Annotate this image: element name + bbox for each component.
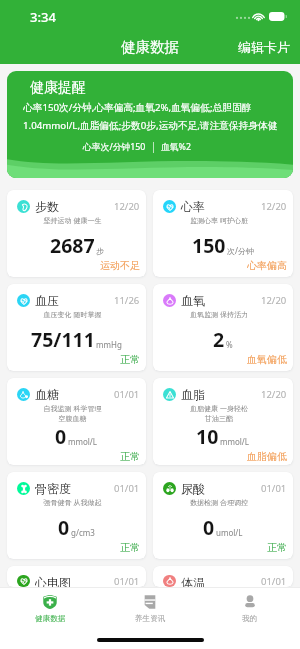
staticText: 150 xyxy=(192,232,226,259)
button[interactable]: 血氧 xyxy=(153,284,293,371)
staticText: 血糖 xyxy=(35,387,59,402)
staticText: 监测心率 呵护心脏 xyxy=(173,216,265,226)
staticText: 12/20 xyxy=(261,388,287,401)
staticText: 血压变化 随时掌握 xyxy=(27,310,118,320)
staticText: 01/01 xyxy=(261,575,287,587)
staticText: 次/分钟 xyxy=(227,245,254,256)
staticText: mmol/L xyxy=(220,436,250,447)
staticText: 12/20 xyxy=(261,294,287,307)
button[interactable]: 编辑卡片 xyxy=(230,38,300,59)
staticText: 01/01 xyxy=(261,482,287,495)
staticText: 2687 xyxy=(50,232,95,259)
staticText: 01/01 xyxy=(114,575,140,587)
staticText: 空腹血糖 xyxy=(27,414,118,423)
staticText: 血氧监测 保持活力 xyxy=(173,310,265,320)
button[interactable]: 血压 xyxy=(7,284,146,371)
button[interactable]: 我的 xyxy=(200,588,300,631)
staticText: 0 xyxy=(58,514,70,541)
staticText: 0 xyxy=(55,423,67,450)
staticText: 12/20 xyxy=(114,200,140,213)
staticText: 01/01 xyxy=(114,388,140,401)
staticText: 01/01 xyxy=(114,482,140,495)
button[interactable]: 体温 xyxy=(153,566,293,587)
staticText: 0 xyxy=(203,514,215,541)
staticText: g/cm3 xyxy=(71,527,95,538)
staticText: 体温 xyxy=(181,575,205,587)
staticText: 血压 xyxy=(35,293,59,308)
staticText: 11/26 xyxy=(114,294,140,307)
staticText: mmol/L xyxy=(68,436,98,447)
staticText: 健康提醒 xyxy=(30,79,86,97)
staticText: 正常 xyxy=(267,541,287,554)
button[interactable]: 健康数据 xyxy=(0,588,100,631)
staticText: 心率150次/分钟,心率偏高;血氧2%,血氧偏低;总胆固醇1.04mmol/L,… xyxy=(23,101,278,132)
staticText: 我的 xyxy=(242,614,258,624)
staticText: mmHg xyxy=(96,339,122,350)
staticText: 运动不足 xyxy=(100,259,140,272)
staticText: 养生资讯 xyxy=(135,614,166,624)
staticText: 尿酸 xyxy=(181,481,205,496)
staticText: 数据检测 合理调控 xyxy=(173,498,265,508)
staticText: 血脂 xyxy=(181,387,205,402)
staticText: 坚持运动 健康一生 xyxy=(27,216,118,226)
staticText: 正常 xyxy=(120,450,140,463)
staticText: umol/L xyxy=(216,527,243,538)
staticText: 3:34 xyxy=(30,8,56,26)
staticText: 步数 xyxy=(35,199,59,214)
staticText: 血氧%2 xyxy=(161,141,191,153)
button[interactable]: 养生资讯 xyxy=(100,588,200,631)
staticText: 健康数据 xyxy=(121,38,179,56)
staticText: 血脂偏低 xyxy=(247,450,287,463)
button[interactable]: 健康提醒 xyxy=(7,71,293,178)
staticText: 心电图 xyxy=(35,575,71,587)
staticText: 正常 xyxy=(120,353,140,366)
staticText: 10 xyxy=(196,423,219,450)
button[interactable]: 心率 xyxy=(153,190,293,277)
staticText: 血脂健康 一身轻松 xyxy=(173,404,265,414)
staticText: 血氧偏低 xyxy=(247,353,287,366)
staticText: 75/111 xyxy=(31,326,95,353)
staticText: 2 xyxy=(213,326,225,353)
staticText: 骨密度 xyxy=(35,481,71,496)
staticText: 心率偏高 xyxy=(247,259,287,272)
staticText: 强骨健骨 从我做起 xyxy=(27,498,118,508)
button[interactable]: 尿酸 xyxy=(153,472,293,559)
staticText: 步 xyxy=(96,246,104,256)
staticText: 编辑卡片 xyxy=(238,39,290,55)
staticText: 健康数据 xyxy=(35,614,66,624)
staticText: 自我监测 科学管理 xyxy=(27,404,118,414)
staticText: 甘油三酯 xyxy=(173,414,265,423)
button[interactable]: 血脂 xyxy=(153,378,293,465)
staticText: % xyxy=(226,339,233,350)
button[interactable]: 心电图 xyxy=(7,566,146,587)
staticText: 12/20 xyxy=(261,200,287,213)
staticText: 血氧 xyxy=(181,293,205,308)
button[interactable]: 骨密度 xyxy=(7,472,146,559)
button[interactable]: 血糖 xyxy=(7,378,146,465)
staticText: 心率 xyxy=(181,199,205,214)
staticText: 心率次/分钟150 xyxy=(83,141,146,153)
button[interactable]: 步数 xyxy=(7,190,146,277)
staticText: 正常 xyxy=(120,541,140,554)
